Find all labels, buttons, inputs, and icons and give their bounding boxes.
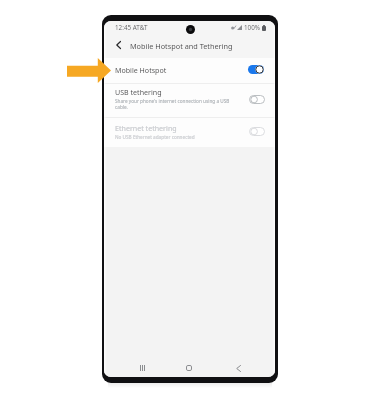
button[interactable]: Back — [230, 359, 246, 377]
staticText: Mobile Hotspot — [115, 65, 167, 75]
button[interactable]: Recent apps — [134, 359, 150, 377]
button[interactable]: Home — [181, 359, 197, 377]
button[interactable]: Back — [111, 38, 125, 52]
staticText: USB tethering — [115, 87, 162, 97]
staticText: Ethernet tethering — [115, 123, 177, 133]
button[interactable]: Turn on — [249, 95, 265, 104]
staticText: 12:45 AT&T — [115, 23, 148, 32]
button[interactable]: USB tethering — [104, 84, 275, 117]
button[interactable]: Mobile Hotspot — [104, 58, 275, 83]
staticText: No USB Ethernet adapter connected — [115, 134, 195, 140]
button[interactable]: Turn on — [249, 127, 265, 136]
staticText: Share your phone's internet connection u… — [115, 98, 231, 110]
staticText: Mobile Hotspot and Tethering — [130, 41, 233, 51]
button[interactable]: Turn off — [248, 65, 264, 74]
staticText: 100% — [244, 23, 261, 32]
button[interactable]: Ethernet tethering — [104, 118, 275, 147]
